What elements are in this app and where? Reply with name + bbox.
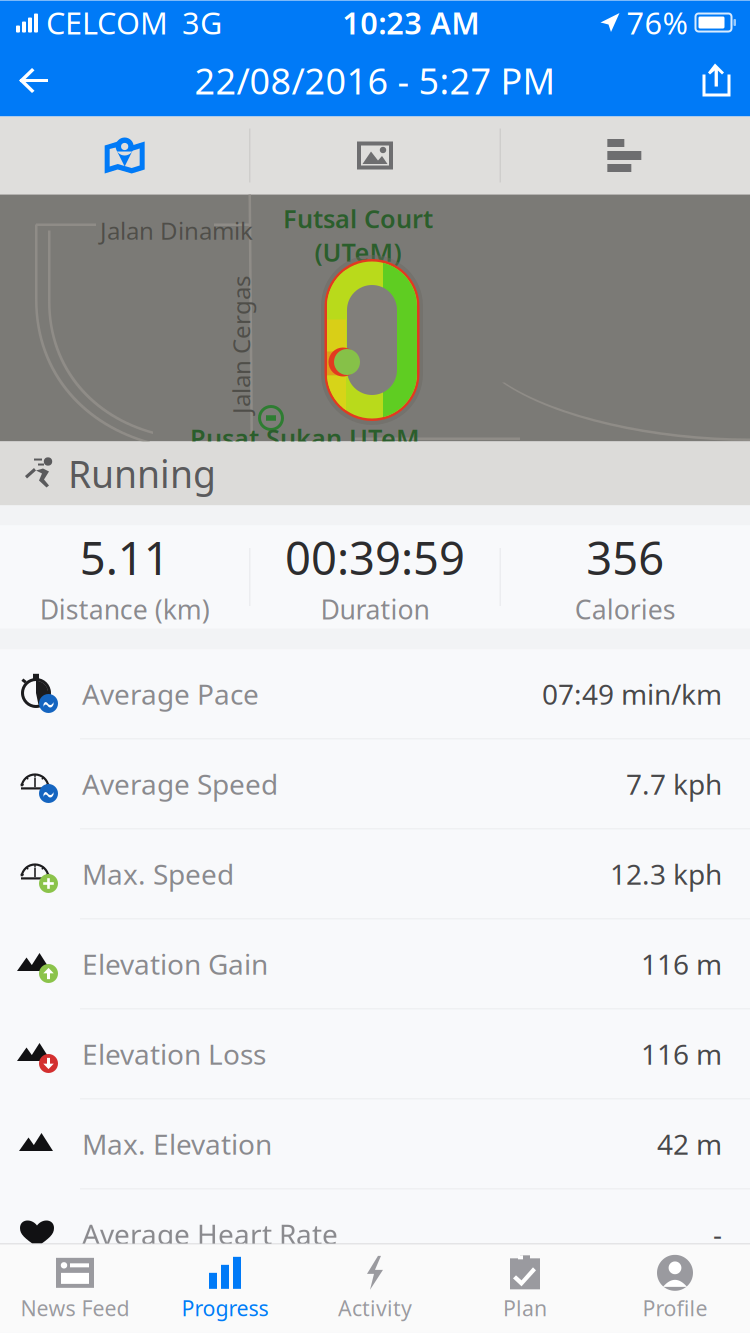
button[interactable]: Plan: [450, 1244, 600, 1332]
button[interactable]: Elevation Gain: [0, 919, 750, 1009]
staticText: 12.3 kph: [610, 855, 722, 893]
staticText: News Feed: [20, 1294, 129, 1322]
staticText: 42 m: [657, 1125, 722, 1163]
button[interactable]: Average Heart Rate: [0, 1189, 750, 1278]
staticText: Duration: [320, 591, 429, 627]
staticText: Max. Elevation: [82, 1125, 272, 1163]
button[interactable]: Profile: [600, 1244, 750, 1332]
staticText: 116 m: [641, 1035, 722, 1073]
staticText: Distance (km): [40, 591, 210, 627]
staticText: -: [713, 1215, 722, 1253]
staticText: Average Pace: [82, 675, 259, 713]
staticText: 3G: [182, 2, 222, 43]
staticText: CELCOM: [46, 2, 168, 43]
staticText: Plan: [503, 1294, 547, 1322]
button[interactable]: Photos: [250, 116, 500, 194]
staticText: Elevation Gain: [82, 945, 268, 983]
staticText: Average Speed: [82, 765, 278, 803]
staticText: Progress: [181, 1294, 268, 1322]
staticText: 7.7 kph: [626, 765, 722, 803]
button[interactable]: Progress: [150, 1244, 300, 1332]
staticText: 07:49 min/km: [542, 675, 722, 713]
staticText: Activity: [338, 1294, 412, 1322]
staticText: Max. Speed: [82, 855, 234, 893]
button[interactable]: Map: [0, 116, 249, 194]
staticText: 00:39:59: [285, 527, 465, 587]
button[interactable]: News Feed: [0, 1244, 150, 1332]
staticText: Jalan Cergas: [172, 329, 310, 361]
staticText: Futsal Court: [283, 201, 433, 235]
staticText: 22/08/2016 - 5:27 PM: [194, 57, 555, 104]
staticText: 5.11: [80, 527, 170, 587]
button[interactable]: Average Speed: [0, 739, 750, 829]
staticText: 76%: [626, 2, 687, 43]
button[interactable]: Elevation Loss: [0, 1009, 750, 1099]
button[interactable]: Charts: [501, 116, 750, 194]
button[interactable]: Activity: [300, 1244, 450, 1332]
staticText: Pusat Sukan UTeM: [190, 421, 420, 455]
button[interactable]: Max. Elevation: [0, 1099, 750, 1189]
staticText: Running: [68, 449, 216, 498]
staticText: 116 m: [641, 945, 722, 983]
button[interactable]: Average Pace: [0, 649, 750, 739]
button[interactable]: Share: [678, 53, 732, 107]
staticText: Profile: [642, 1294, 707, 1322]
staticText: Calories: [575, 591, 676, 627]
staticText: Jalan Dinamik: [100, 214, 253, 246]
staticText: Elevation Loss: [82, 1035, 266, 1073]
staticText: 10:23 AM: [342, 2, 479, 43]
staticText: 356: [586, 527, 664, 587]
staticText: (UTeM): [314, 235, 401, 269]
button[interactable]: Back: [18, 53, 72, 107]
staticText: Average Heart Rate: [82, 1215, 338, 1253]
button[interactable]: Max. Speed: [0, 829, 750, 919]
